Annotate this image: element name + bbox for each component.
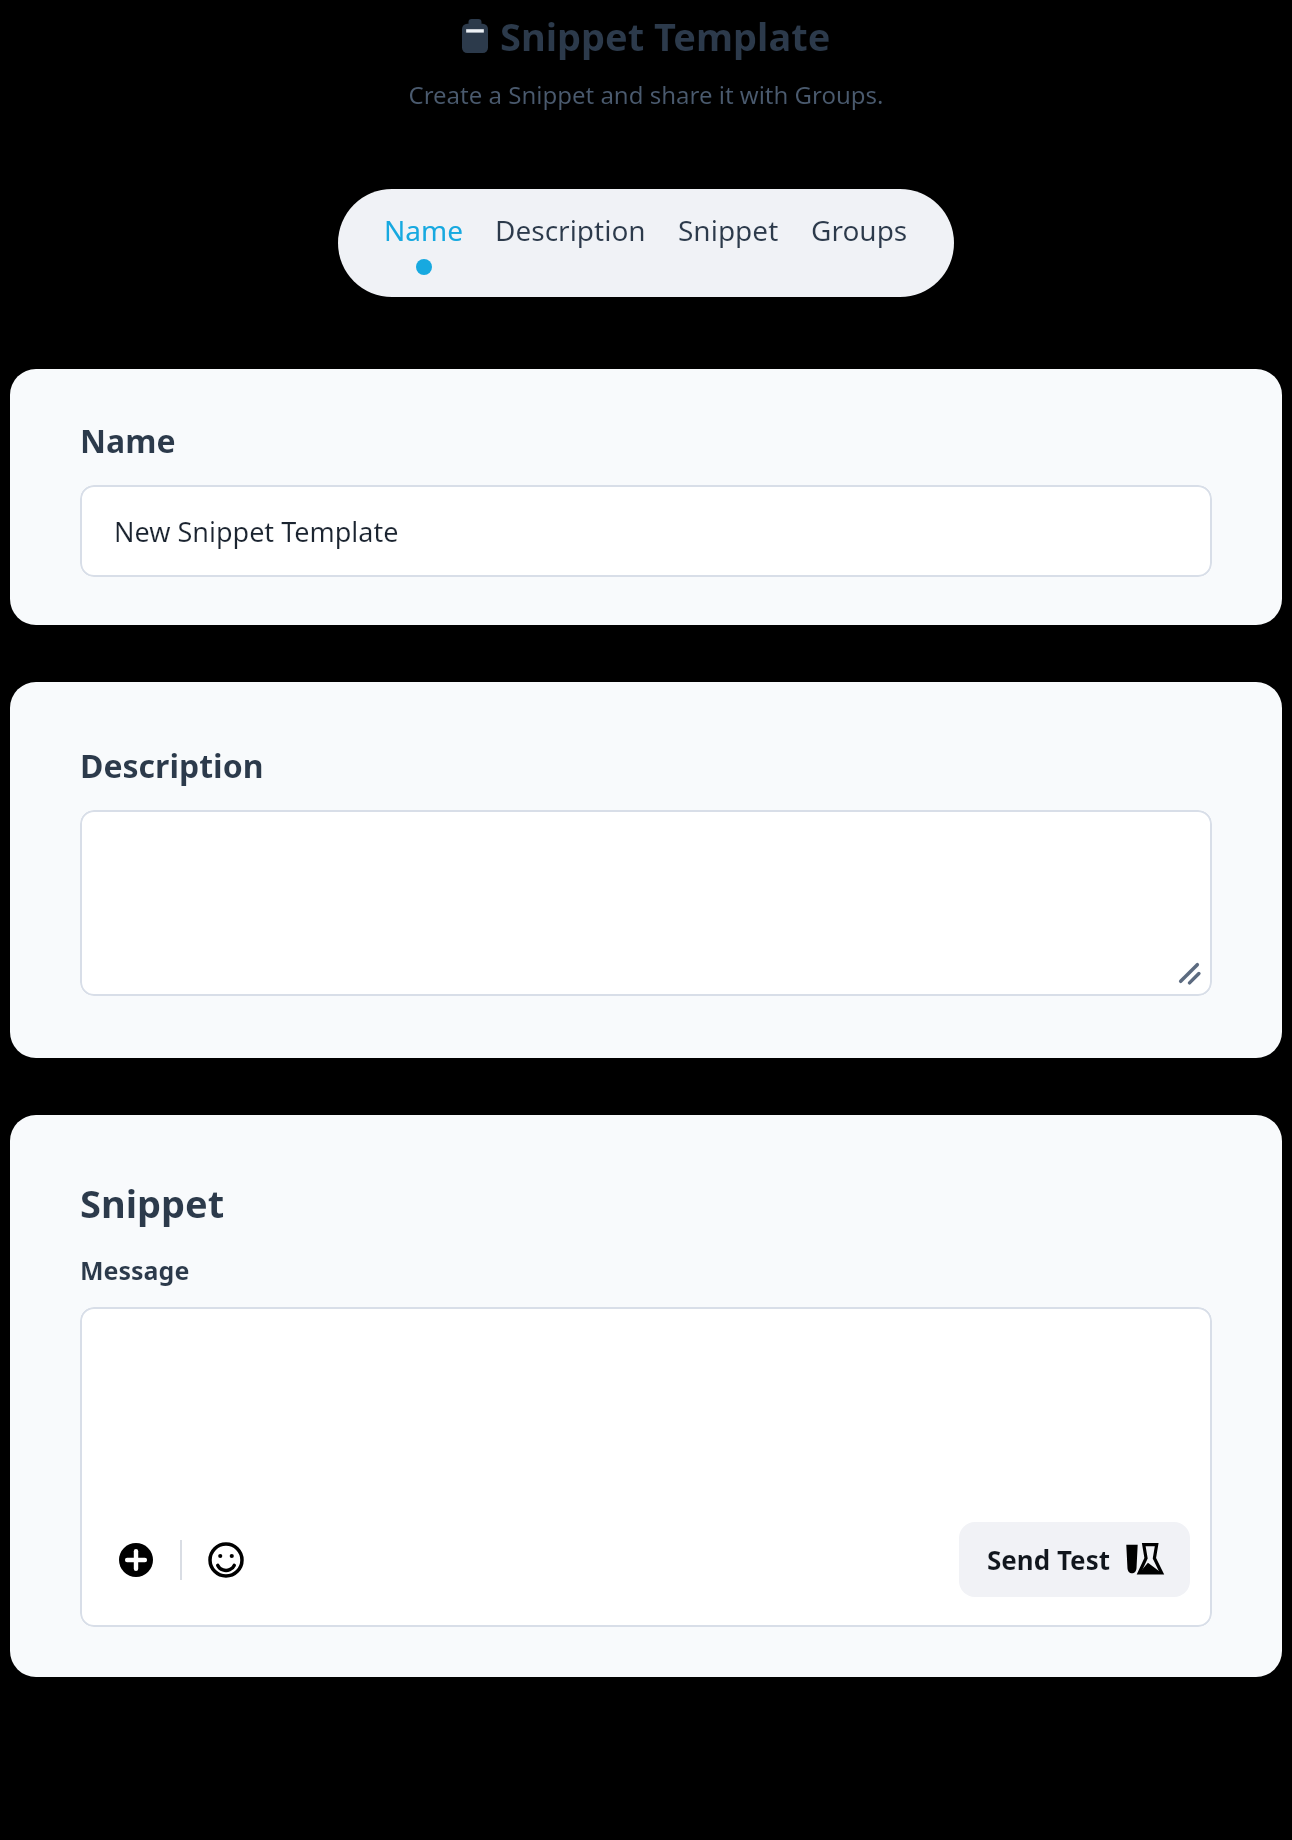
staticText: Description xyxy=(495,211,646,249)
button[interactable]: Add attachment xyxy=(114,1538,158,1582)
staticText: Send Test xyxy=(987,1542,1110,1577)
staticText: Snippet xyxy=(80,1177,225,1229)
button[interactable]: Snippet xyxy=(678,211,779,275)
button[interactable] xyxy=(80,810,1212,996)
staticText: Name xyxy=(80,419,176,463)
button[interactable]: Send Test xyxy=(959,1522,1190,1597)
button[interactable]: Name xyxy=(384,211,463,275)
staticText: Description xyxy=(80,744,264,788)
staticText: New Snippet Template xyxy=(114,513,399,550)
button[interactable]: Description xyxy=(495,211,646,275)
staticText: Snippet Template xyxy=(500,10,831,62)
button[interactable]: Groups xyxy=(811,211,908,275)
staticText: Create a Snippet and share it with Group… xyxy=(408,78,884,111)
button[interactable]: Emoji xyxy=(204,1538,248,1582)
staticText: Snippet xyxy=(678,211,779,249)
staticText: Groups xyxy=(811,211,908,249)
staticText: Message xyxy=(80,1253,190,1287)
staticText: Name xyxy=(384,211,463,249)
button[interactable]: New Snippet Template xyxy=(80,485,1212,577)
